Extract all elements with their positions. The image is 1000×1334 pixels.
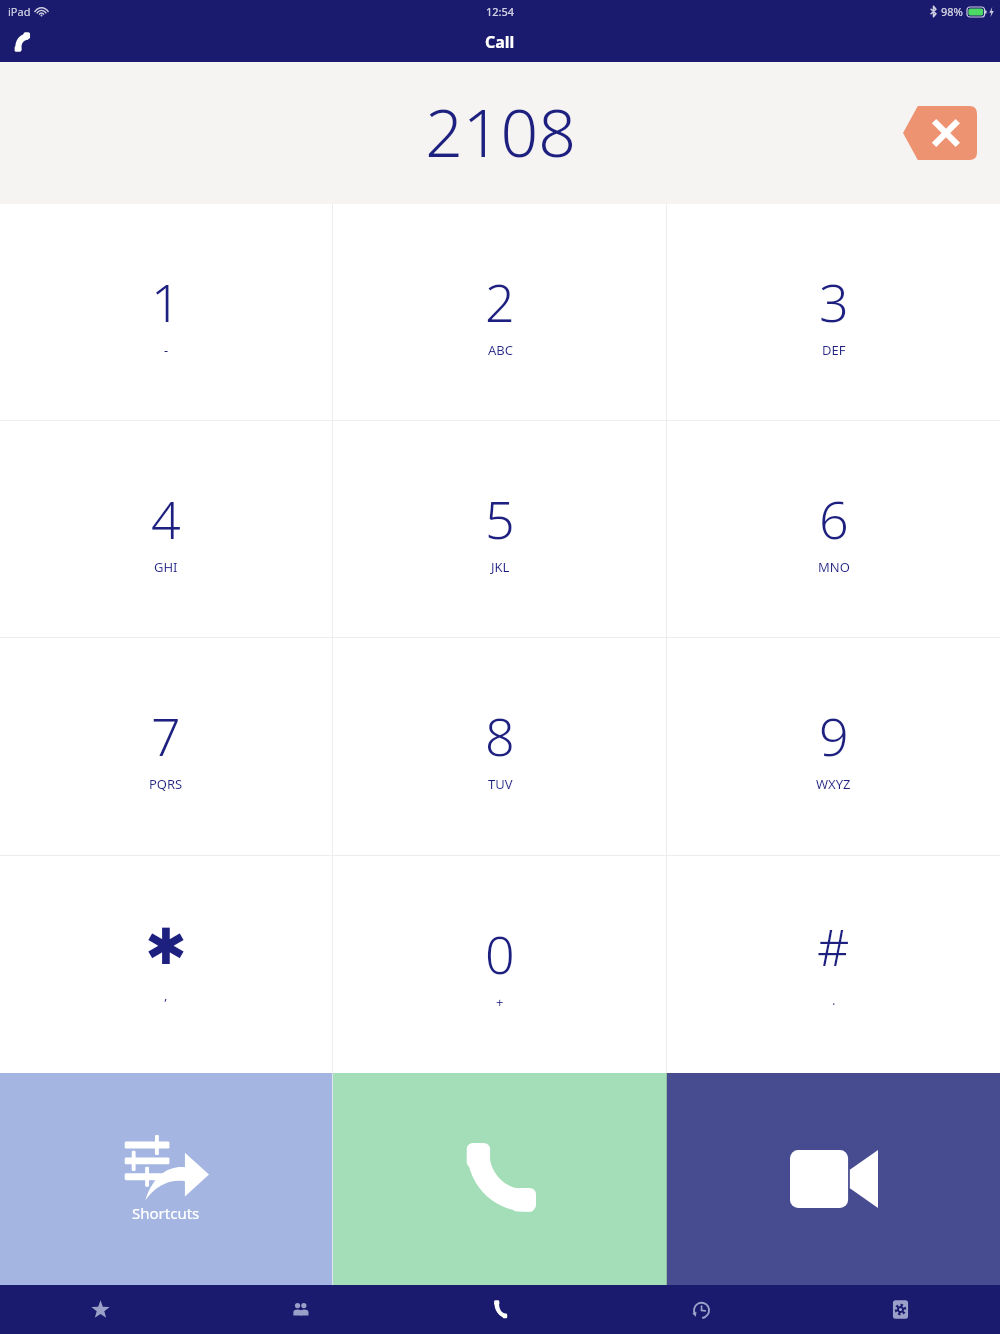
staticText: 3 <box>819 266 849 337</box>
staticText: JKL <box>491 558 510 576</box>
staticText: MNO <box>818 558 850 576</box>
button[interactable]: 3 <box>667 204 1000 420</box>
staticText: Call <box>485 31 515 53</box>
staticText: 9 <box>819 700 849 771</box>
button[interactable]: Contacts <box>200 1285 400 1334</box>
staticText: 6 <box>819 483 849 554</box>
staticText: ABC <box>488 341 513 359</box>
button[interactable]: ✱ <box>0 856 332 1073</box>
button[interactable]: 9 <box>667 638 1000 855</box>
staticText: 7 <box>151 700 181 771</box>
staticText: . <box>832 991 836 1009</box>
staticText: , <box>164 986 168 1004</box>
button[interactable]: 5 <box>333 421 666 637</box>
button[interactable]: # <box>667 856 1000 1073</box>
staticText: DEF <box>822 341 846 359</box>
button[interactable]: Back <box>0 22 46 62</box>
staticText: 1 <box>151 266 181 337</box>
button[interactable]: 6 <box>667 421 1000 637</box>
staticText: 12:54 <box>486 4 515 19</box>
staticText: 2108 <box>425 86 576 176</box>
button[interactable]: Recents <box>600 1285 800 1334</box>
staticText: 4 <box>151 483 181 554</box>
staticText: 2 <box>485 266 515 337</box>
button[interactable]: 2 <box>333 204 666 420</box>
button[interactable]: 4 <box>0 421 332 637</box>
button[interactable]: Call <box>333 1073 666 1285</box>
button[interactable]: 1 <box>0 204 332 420</box>
staticText: TUV <box>488 775 513 793</box>
staticText: 5 <box>485 483 515 554</box>
staticText: PQRS <box>149 775 183 793</box>
button[interactable]: 0 <box>333 856 666 1073</box>
staticText: 8 <box>485 700 515 771</box>
button[interactable]: Settings <box>800 1285 1000 1334</box>
staticText: + <box>496 993 504 1011</box>
button[interactable]: Shortcuts <box>0 1073 332 1285</box>
button[interactable]: Video call <box>667 1073 1000 1285</box>
staticText: 98% <box>941 4 963 19</box>
staticText: # <box>817 913 850 981</box>
staticText: WXYZ <box>816 775 851 793</box>
staticText: iPad <box>8 4 31 19</box>
staticText: GHI <box>154 558 178 576</box>
button[interactable]: Backspace <box>903 106 977 160</box>
button[interactable]: Keypad <box>400 1285 600 1334</box>
button[interactable]: 7 <box>0 638 332 855</box>
staticText: Shortcuts <box>132 1203 200 1223</box>
button[interactable]: 8 <box>333 638 666 855</box>
button[interactable]: Favourites <box>0 1285 200 1334</box>
staticText: - <box>164 341 169 359</box>
staticText: ✱ <box>145 918 187 976</box>
staticText: 0 <box>485 918 515 989</box>
